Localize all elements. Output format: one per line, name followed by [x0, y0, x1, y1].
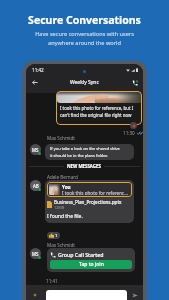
button[interactable]: Tap to join: [50, 260, 132, 269]
staticText: Business_Plan_Projections.pptx: [54, 199, 122, 205]
staticText: If you take a look on the shared drive i…: [50, 146, 120, 158]
button[interactable]: Call: [129, 77, 140, 88]
staticText: AB: [33, 183, 39, 189]
staticText: 12MB: [54, 205, 65, 210]
staticText: Weekly Sync: [70, 79, 99, 86]
staticText: Max Schmidt: [47, 242, 75, 248]
staticText: 11:30: [123, 130, 135, 136]
staticText: Have secure conversations with users any…: [0, 30, 169, 46]
staticText: I found the file.: [47, 213, 83, 220]
staticText: Max Schmidt: [47, 135, 75, 141]
staticText: MS: [32, 251, 39, 257]
button[interactable]: [46, 290, 127, 300]
staticText: I took this photo for reference, but I c…: [60, 105, 134, 118]
button[interactable]: Attach: [31, 291, 39, 299]
staticText: 1: [55, 233, 58, 238]
button[interactable]: If you take a look on the shared drive i…: [45, 144, 134, 160]
button[interactable]: Back: [29, 77, 40, 88]
staticText: Group Call Started: [58, 251, 104, 258]
staticText: Secure Conversations: [0, 13, 169, 27]
staticText: You: [62, 184, 71, 190]
button[interactable]: I took this photo for reference, but I c…: [56, 91, 142, 125]
button[interactable]: Send: [130, 290, 140, 300]
staticText: 11:42: [32, 67, 44, 73]
button[interactable]: You: [47, 182, 132, 221]
staticText: Adele Bernard: [47, 174, 78, 180]
staticText: MS: [32, 147, 39, 153]
staticText: I took this photo for reference...: [62, 190, 130, 195]
staticText: NEW MESSAGES: [67, 163, 101, 169]
staticText: Tap to join: [79, 261, 104, 268]
staticText: 11:41: [46, 278, 58, 284]
